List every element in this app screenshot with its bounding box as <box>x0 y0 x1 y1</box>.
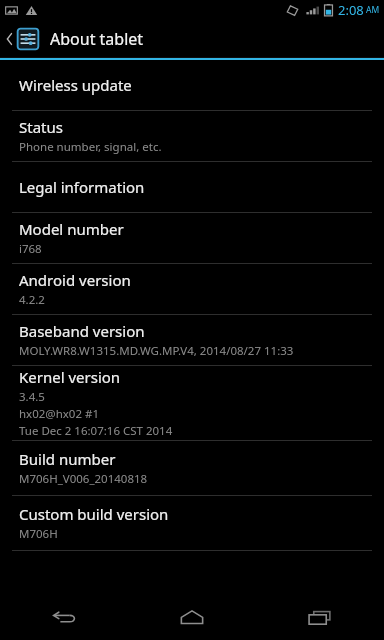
staticText: Wireless update <box>19 75 132 95</box>
button[interactable]: Kernel version <box>0 366 384 440</box>
staticText: Kernel version <box>19 367 121 387</box>
staticText: Tue Dec 2 16:07:16 CST 2014 <box>19 423 173 439</box>
staticText: hx02@hx02 #1 <box>19 406 100 422</box>
staticText: Phone number, signal, etc. <box>19 139 162 155</box>
staticText: M706H <box>19 526 58 542</box>
staticText: MOLY.WR8.W1315.MD.WG.MP.V4, 2014/08/27 1… <box>19 343 294 359</box>
staticText: i768 <box>19 241 42 257</box>
staticText: 3.4.5 <box>19 389 45 405</box>
staticText: 2:08 <box>338 1 364 19</box>
staticText: Status <box>19 117 63 137</box>
staticText: Model number <box>19 219 124 239</box>
staticText: About tablet <box>50 28 144 50</box>
button[interactable]: Custom build version <box>0 496 384 550</box>
button[interactable]: Back to Settings <box>0 20 384 57</box>
button[interactable]: Build number <box>0 441 384 495</box>
button[interactable]: Home <box>128 594 256 640</box>
staticText: Build number <box>19 449 116 469</box>
staticText: Custom build version <box>19 504 169 524</box>
staticText: Baseband version <box>19 321 145 341</box>
button[interactable]: Back <box>0 594 128 640</box>
button[interactable]: Legal information <box>0 162 384 212</box>
staticText: Legal information <box>19 177 145 197</box>
staticText: AM <box>366 4 380 16</box>
button[interactable]: Model number <box>0 213 384 263</box>
button[interactable]: Recent apps <box>256 594 384 640</box>
staticText: 4.2.2 <box>19 292 45 308</box>
button[interactable]: Status <box>0 111 384 161</box>
button[interactable]: Baseband version <box>0 315 384 365</box>
button[interactable]: Wireless update <box>0 60 384 110</box>
button[interactable]: Android version <box>0 264 384 314</box>
staticText: M706H_V006_20140818 <box>19 471 148 487</box>
staticText: Android version <box>19 270 131 290</box>
